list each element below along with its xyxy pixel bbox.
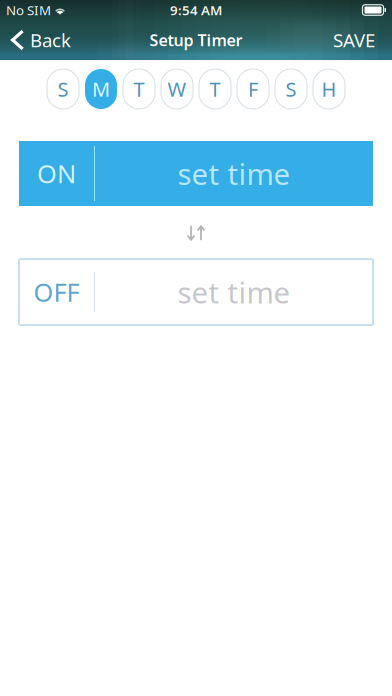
button[interactable]: S xyxy=(47,69,79,109)
staticText: H xyxy=(321,76,336,102)
button[interactable]: H xyxy=(313,69,345,109)
button[interactable]: T xyxy=(199,69,231,109)
staticText: Back xyxy=(30,28,71,52)
staticText: S xyxy=(57,76,68,102)
button[interactable]: Back xyxy=(0,20,79,60)
button[interactable]: S xyxy=(275,69,307,109)
staticText: T xyxy=(209,76,220,102)
button[interactable]: F xyxy=(237,69,269,109)
staticText: W xyxy=(167,76,186,102)
button[interactable]: OFF xyxy=(19,259,373,325)
button[interactable]: W xyxy=(161,69,193,109)
staticText: 9:54 AM xyxy=(170,1,222,19)
staticText: M xyxy=(92,76,110,102)
staticText: SAVE xyxy=(333,28,375,52)
button[interactable]: SAVE xyxy=(325,20,392,60)
staticText: T xyxy=(133,76,144,102)
button[interactable]: T xyxy=(123,69,155,109)
staticText: ON xyxy=(37,157,76,190)
button[interactable]: ON xyxy=(19,141,373,206)
staticText: set time xyxy=(177,154,290,193)
staticText: set time xyxy=(177,272,290,311)
staticText: Setup Timer xyxy=(149,29,242,51)
button[interactable]: M xyxy=(85,69,117,109)
staticText: S xyxy=(285,76,296,102)
staticText: OFF xyxy=(33,275,79,309)
staticText: F xyxy=(248,76,258,102)
staticText: No SIM xyxy=(6,1,51,19)
